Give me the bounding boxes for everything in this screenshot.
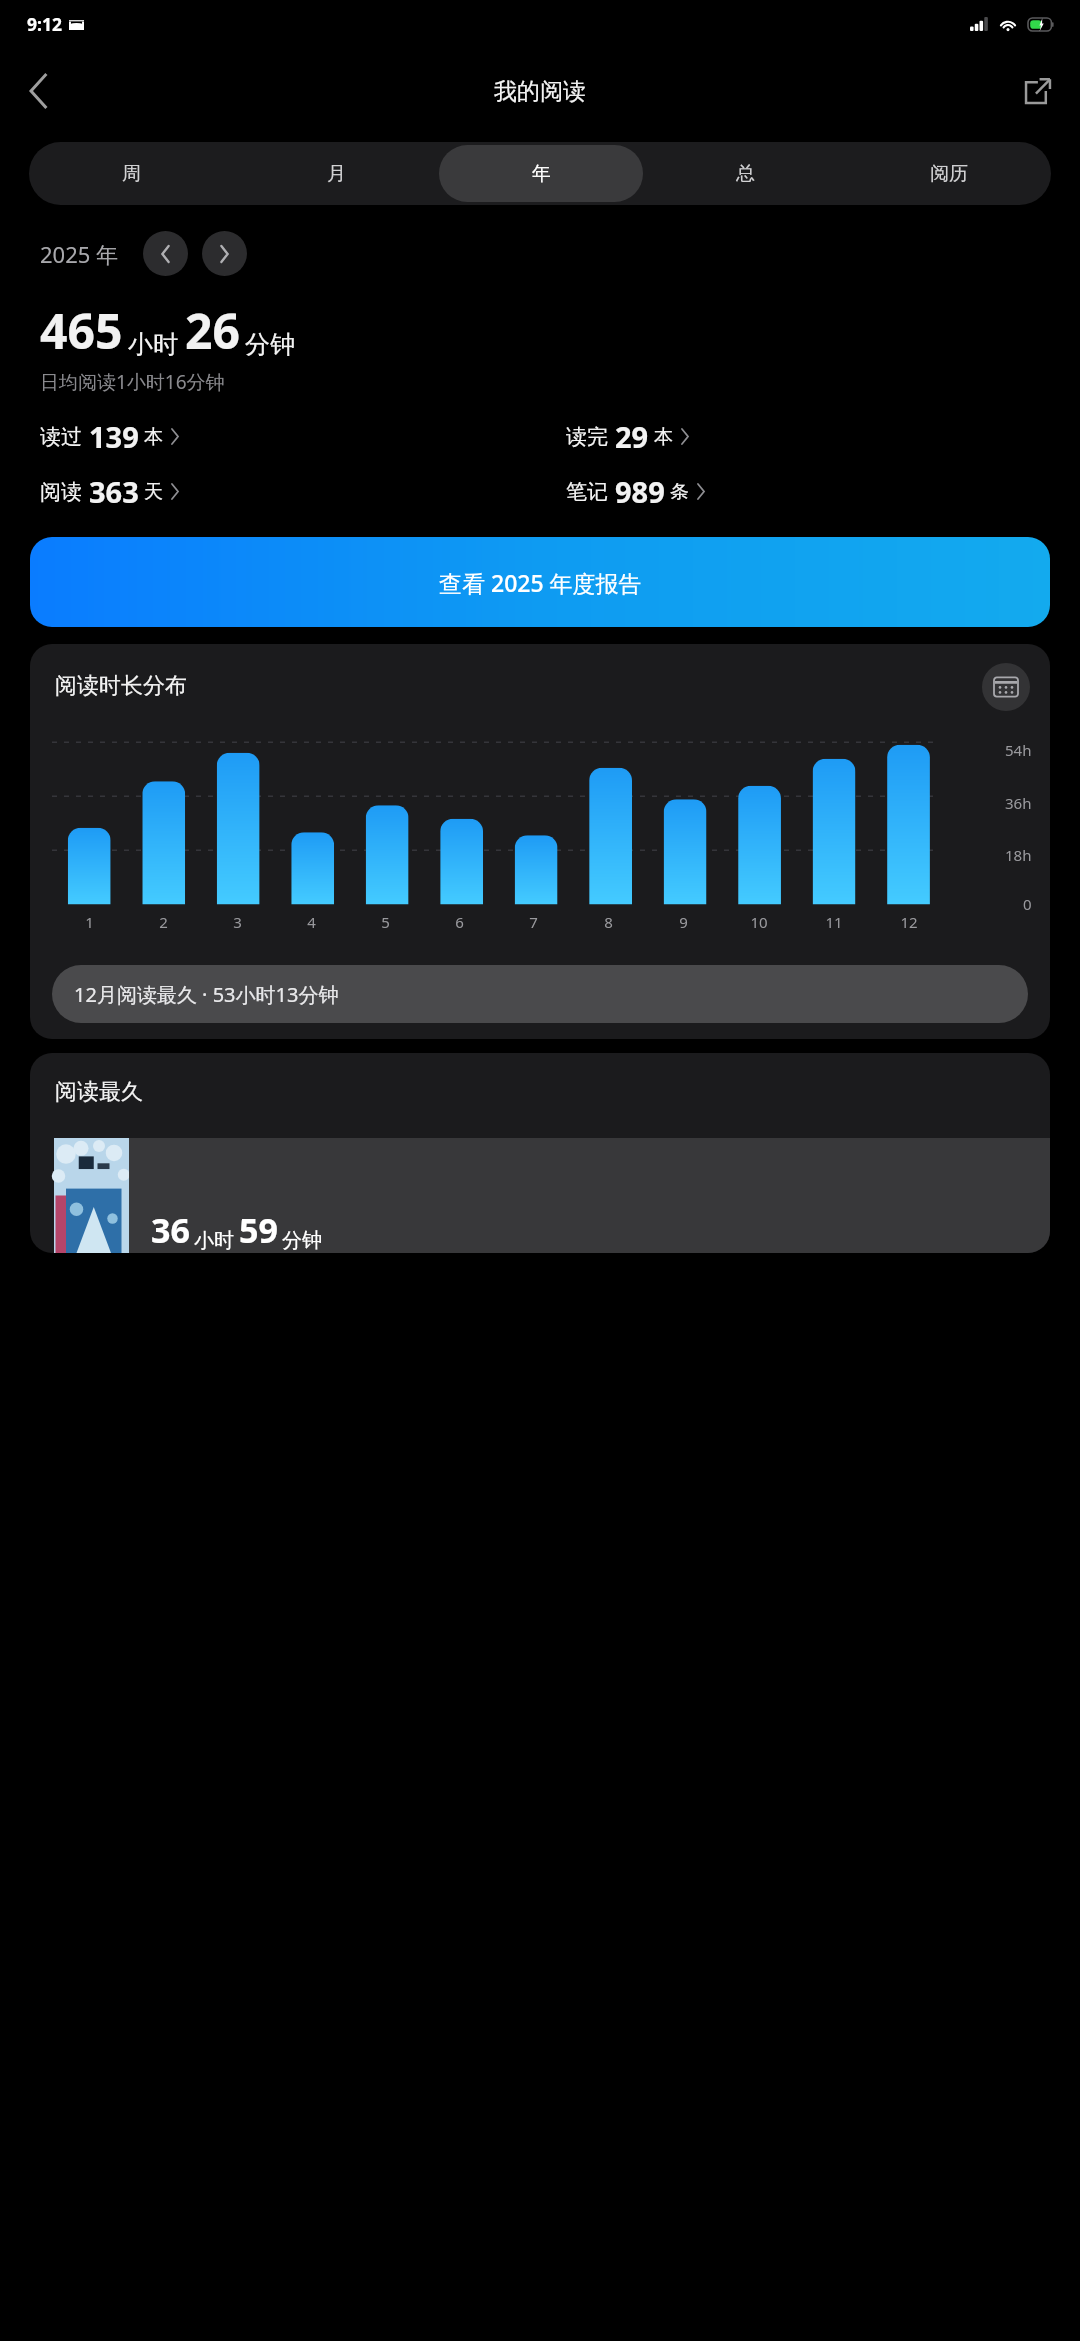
- staticText: 笔记: [566, 479, 608, 505]
- staticText: 本: [654, 425, 673, 449]
- staticText: 月: [327, 162, 346, 186]
- staticText: 59: [239, 1207, 278, 1253]
- staticText: 5: [381, 912, 390, 932]
- button[interactable]: 阅历: [847, 145, 1051, 202]
- button[interactable]: 总: [643, 145, 847, 202]
- staticText: 年: [532, 162, 551, 186]
- staticText: 3: [233, 912, 242, 932]
- staticText: 周: [122, 162, 141, 186]
- staticText: 139: [89, 417, 139, 456]
- staticText: 9: [679, 912, 688, 932]
- button[interactable]: 笔记: [566, 472, 1080, 511]
- button[interactable]: 阅读最久: [30, 1053, 1050, 1253]
- staticText: 4: [307, 912, 316, 932]
- staticText: 阅历: [930, 162, 968, 186]
- staticText: 8: [604, 912, 613, 932]
- staticText: 11: [825, 912, 843, 932]
- button[interactable]: Next year: [202, 231, 247, 276]
- button[interactable]: 12月阅读最久 · 53小时13分钟: [52, 965, 1028, 1023]
- staticText: 18h: [1005, 845, 1032, 865]
- staticText: 54h: [1005, 740, 1032, 760]
- button[interactable]: 读完: [566, 417, 1080, 456]
- staticText: 0: [1023, 894, 1032, 914]
- staticText: 1: [85, 912, 94, 932]
- staticText: 阅读时长分布: [55, 672, 187, 700]
- staticText: 天: [144, 480, 163, 504]
- staticText: 小时: [128, 329, 178, 360]
- staticText: 989: [615, 472, 665, 511]
- button[interactable]: Calendar: [982, 663, 1030, 711]
- staticText: 10: [750, 912, 768, 932]
- staticText: 本: [144, 425, 163, 449]
- staticText: 7: [529, 912, 538, 932]
- button[interactable]: 月: [234, 145, 439, 202]
- button[interactable]: Share: [1010, 63, 1066, 119]
- staticText: 29: [615, 417, 649, 456]
- staticText: 总: [736, 162, 755, 186]
- staticText: 小时: [194, 1228, 234, 1253]
- button[interactable]: Back: [10, 62, 68, 120]
- button[interactable]: 读过: [40, 417, 540, 456]
- staticText: 363: [89, 472, 139, 511]
- button[interactable]: 查看 2025 年度报告: [30, 537, 1050, 627]
- staticText: 12: [900, 912, 918, 932]
- staticText: 查看 2025 年度报告: [439, 567, 642, 598]
- staticText: 26: [185, 298, 240, 363]
- button[interactable]: Previous year: [143, 231, 188, 276]
- staticText: 36h: [1005, 793, 1032, 813]
- staticText: 465: [40, 298, 123, 363]
- staticText: 12月阅读最久 · 53小时13分钟: [74, 981, 339, 1008]
- staticText: 读过: [40, 424, 82, 450]
- staticText: 2: [159, 912, 168, 932]
- staticText: 读完: [566, 424, 608, 450]
- staticText: 分钟: [282, 1228, 322, 1253]
- staticText: 分钟: [245, 329, 295, 360]
- staticText: 2025 年: [40, 239, 119, 269]
- staticText: 我的阅读: [494, 77, 586, 106]
- button[interactable]: 周: [29, 145, 234, 202]
- staticText: 阅读: [40, 479, 82, 505]
- button[interactable]: 阅读: [40, 472, 540, 511]
- staticText: 阅读最久: [55, 1078, 143, 1106]
- button[interactable]: 年: [439, 145, 643, 202]
- staticText: 9:12: [27, 12, 62, 36]
- staticText: 条: [670, 480, 689, 504]
- staticText: 36: [151, 1207, 190, 1253]
- staticText: 日均阅读1小时16分钟: [40, 369, 225, 395]
- staticText: 6: [455, 912, 464, 932]
